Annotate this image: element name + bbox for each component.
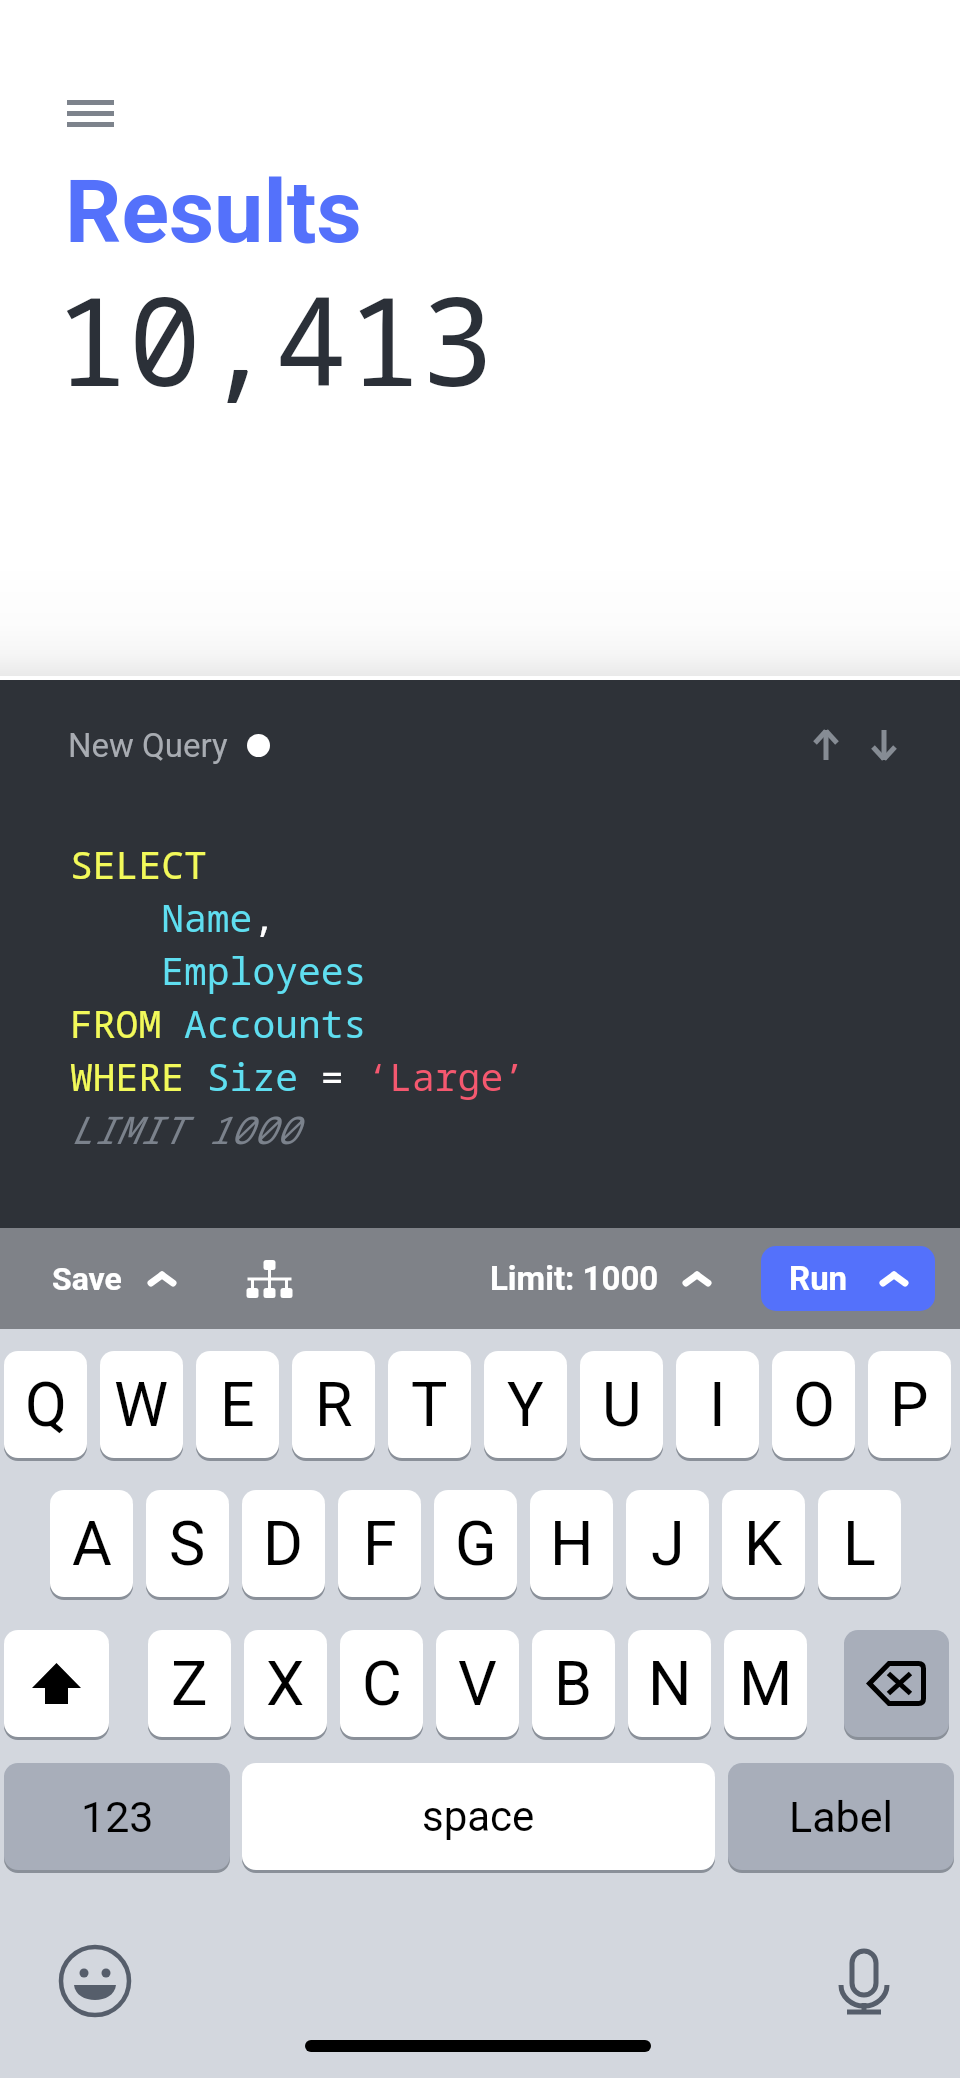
- button[interactable]: J: [626, 1490, 709, 1597]
- button[interactable]: M: [724, 1630, 807, 1737]
- button[interactable]: R: [292, 1351, 375, 1458]
- button[interactable]: X: [244, 1630, 327, 1737]
- button[interactable]: Emoji: [58, 1944, 132, 2018]
- staticText: H: [550, 1508, 594, 1579]
- staticText: W: [114, 1369, 169, 1440]
- staticText: A: [72, 1508, 112, 1579]
- button[interactable]: Limit: 1000: [490, 1259, 711, 1298]
- staticText: SELECT Name, Employees FROM Accounts WHE…: [70, 838, 527, 1155]
- button[interactable]: N: [628, 1630, 711, 1737]
- button[interactable]: Move down: [856, 717, 912, 773]
- staticText: T: [411, 1369, 448, 1440]
- button[interactable]: Shift: [4, 1630, 109, 1737]
- button[interactable]: G: [434, 1490, 517, 1597]
- button[interactable]: Menu: [52, 86, 130, 142]
- staticText: Limit: 1000: [490, 1259, 659, 1298]
- staticText: I: [709, 1369, 726, 1440]
- staticText: J: [651, 1508, 685, 1579]
- staticText: space: [422, 1792, 535, 1841]
- button[interactable]: New Query: [68, 726, 270, 765]
- button[interactable]: I: [676, 1351, 759, 1458]
- staticText: Z: [171, 1648, 208, 1719]
- button[interactable]: B: [532, 1630, 615, 1737]
- button[interactable]: U: [580, 1351, 663, 1458]
- button[interactable]: S: [146, 1490, 229, 1597]
- staticText: G: [455, 1508, 497, 1579]
- staticText: C: [362, 1648, 402, 1719]
- button[interactable]: P: [868, 1351, 951, 1458]
- button[interactable]: D: [242, 1490, 325, 1597]
- button[interactable]: Backspace: [844, 1630, 949, 1737]
- button[interactable]: F: [338, 1490, 421, 1597]
- staticText: K: [744, 1508, 783, 1579]
- staticText: M: [739, 1648, 793, 1719]
- staticText: Y: [507, 1369, 544, 1440]
- staticText: X: [266, 1648, 305, 1719]
- button[interactable]: T: [388, 1351, 471, 1458]
- button[interactable]: Voice input: [827, 1944, 901, 2018]
- button[interactable]: Y: [484, 1351, 567, 1458]
- staticText: U: [602, 1369, 642, 1440]
- button[interactable]: E: [196, 1351, 279, 1458]
- button[interactable]: L: [818, 1490, 901, 1597]
- button[interactable]: Q: [4, 1351, 87, 1458]
- staticText: Q: [25, 1369, 67, 1440]
- button[interactable]: A: [50, 1490, 133, 1597]
- staticText: E: [220, 1369, 255, 1440]
- staticText: N: [648, 1648, 692, 1719]
- staticText: Results: [65, 160, 362, 263]
- button[interactable]: K: [722, 1490, 805, 1597]
- button[interactable]: C: [340, 1630, 423, 1737]
- button[interactable]: V: [436, 1630, 519, 1737]
- button[interactable]: 123: [4, 1763, 230, 1870]
- staticText: Save: [52, 1260, 122, 1298]
- staticText: B: [554, 1648, 593, 1719]
- staticText: Run: [789, 1259, 848, 1298]
- staticText: 10,413: [55, 256, 495, 422]
- staticText: R: [315, 1369, 353, 1440]
- staticText: 123: [81, 1792, 154, 1842]
- button[interactable]: space: [242, 1763, 715, 1870]
- button[interactable]: W: [100, 1351, 183, 1458]
- staticText: L: [843, 1508, 876, 1579]
- button[interactable]: H: [530, 1490, 613, 1597]
- button[interactable]: Move up: [798, 717, 854, 773]
- button[interactable]: Schema: [234, 1244, 304, 1314]
- staticText: D: [263, 1508, 304, 1579]
- staticText: O: [793, 1369, 835, 1440]
- staticText: New Query: [68, 726, 228, 765]
- button[interactable]: O: [772, 1351, 855, 1458]
- button[interactable]: Save: [52, 1260, 176, 1298]
- button[interactable]: Run: [761, 1246, 935, 1311]
- staticText: F: [363, 1508, 397, 1579]
- staticText: S: [169, 1508, 206, 1579]
- button[interactable]: Label: [728, 1763, 954, 1870]
- staticText: P: [890, 1369, 929, 1440]
- staticText: V: [458, 1648, 497, 1719]
- staticText: Label: [789, 1792, 893, 1842]
- button[interactable]: Z: [148, 1630, 231, 1737]
